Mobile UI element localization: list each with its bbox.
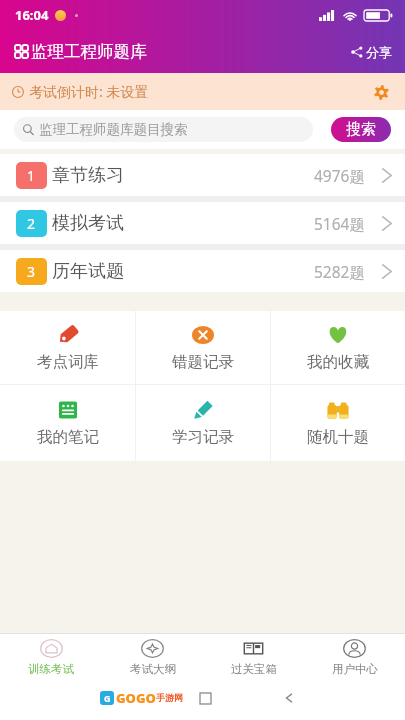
button[interactable]: 1 xyxy=(0,154,405,196)
button[interactable]: 训练考试 xyxy=(0,634,102,675)
button[interactable]: 学习记录 xyxy=(136,385,270,461)
button[interactable]: 2 xyxy=(0,202,405,244)
staticText: 手游网 xyxy=(156,692,183,703)
staticText: 1 xyxy=(27,166,36,185)
button[interactable]: 过关宝箱 xyxy=(203,634,304,675)
staticText: 2 xyxy=(27,214,36,233)
staticText: 4976题 xyxy=(314,165,365,186)
button[interactable]: 分享 xyxy=(351,44,392,60)
staticText: 考点词库 xyxy=(37,352,99,372)
button[interactable]: Recent apps xyxy=(197,690,213,706)
button[interactable]: 考试大纲 xyxy=(102,634,203,675)
staticText: 考试大纲 xyxy=(130,662,176,675)
staticText: 5164题 xyxy=(314,213,365,234)
staticText: 监理工程师题库题目搜索 xyxy=(39,121,188,138)
staticText: 用户中心 xyxy=(332,662,378,675)
staticText: 模拟考试 xyxy=(52,212,124,235)
staticText: 错题记录 xyxy=(172,352,234,372)
staticText: 训练考试 xyxy=(28,662,74,675)
button[interactable]: 我的收藏 xyxy=(271,311,405,384)
button[interactable]: 考试倒计时: 未设置 xyxy=(0,73,405,110)
button[interactable]: Back xyxy=(281,690,297,706)
staticText: 16:04 xyxy=(15,6,49,24)
button[interactable]: 我的笔记 xyxy=(0,385,135,461)
staticText: 学习记录 xyxy=(172,427,234,447)
button[interactable]: 监理工程师题库题目搜索 xyxy=(14,117,313,142)
staticText: G xyxy=(104,692,111,704)
button[interactable]: 随机十题 xyxy=(271,385,405,461)
button[interactable]: 考点词库 xyxy=(0,311,135,384)
staticText: 随机十题 xyxy=(307,427,369,447)
staticText: 分享 xyxy=(366,44,392,60)
staticText: 过关宝箱 xyxy=(231,662,277,675)
button[interactable]: 搜索 xyxy=(331,117,391,142)
staticText: 5282题 xyxy=(314,261,365,282)
staticText: 章节练习 xyxy=(52,164,124,187)
staticText: GOGO xyxy=(116,689,156,707)
staticText: 我的笔记 xyxy=(37,427,99,447)
staticText: 考试倒计时: 未设置 xyxy=(29,82,149,101)
staticText: 3 xyxy=(27,262,36,281)
staticText: 我的收藏 xyxy=(307,352,369,372)
other: All categories xyxy=(15,45,28,58)
button[interactable]: Settings xyxy=(369,80,393,104)
staticText: 监理工程师题库 xyxy=(31,41,147,62)
button[interactable]: 用户中心 xyxy=(304,634,405,675)
staticText: 历年试题 xyxy=(52,260,124,283)
button[interactable]: 错题记录 xyxy=(136,311,270,384)
button[interactable]: 3 xyxy=(0,250,405,292)
staticText: 搜索 xyxy=(346,120,376,139)
